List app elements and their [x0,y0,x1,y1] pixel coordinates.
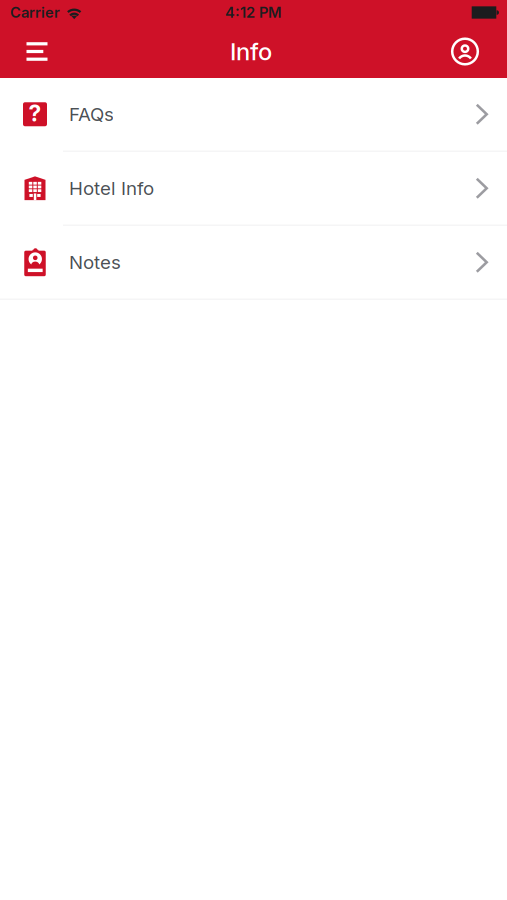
button[interactable]: Hotel Info [0,152,507,226]
button[interactable]: Menu [13,25,61,78]
staticText: Carrier [10,4,60,21]
staticText: 4:12 PM [225,4,282,21]
button[interactable]: Account [441,25,489,78]
staticText: FAQs [69,103,114,126]
staticText: Notes [69,251,121,274]
button[interactable]: Notes [0,226,507,300]
staticText: Info [230,37,272,66]
staticText: ? [28,99,41,127]
staticText: Hotel Info [69,177,154,200]
button[interactable]: ? [0,78,507,152]
